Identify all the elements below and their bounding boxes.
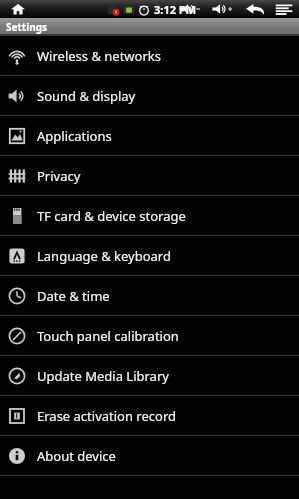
button[interactable]: Menu — [275, 1, 293, 17]
button[interactable]: Sound & display — [0, 76, 299, 115]
staticText: TF card & device storage — [37, 207, 186, 225]
staticText: Sound & display — [37, 87, 136, 105]
staticText: Date & time — [37, 287, 110, 305]
staticText: About device — [37, 447, 116, 465]
staticText: Language & keyboard — [37, 247, 171, 265]
staticText: Erase activation record — [37, 407, 177, 425]
button[interactable]: Volume down — [179, 1, 203, 17]
button[interactable]: About device — [0, 436, 299, 475]
staticText: Update Media Library — [37, 367, 169, 385]
staticText: Wireless & networks — [37, 47, 161, 65]
staticText: Applications — [37, 127, 112, 145]
button[interactable]: Back — [245, 1, 265, 17]
button[interactable]: Language & keyboard — [0, 236, 299, 275]
button[interactable]: TF card & device storage — [0, 196, 299, 235]
button[interactable]: Touch panel calibration — [0, 316, 299, 355]
button[interactable]: Applications — [0, 116, 299, 155]
staticText: Settings — [6, 20, 47, 34]
staticText: Privacy — [37, 167, 81, 185]
button[interactable]: Date & time — [0, 276, 299, 315]
button[interactable]: Wireless & networks — [0, 36, 299, 75]
staticText: 3:12 PM — [154, 2, 197, 17]
button[interactable]: Home — [10, 1, 26, 17]
button[interactable]: Privacy — [0, 156, 299, 195]
button[interactable]: Volume up — [211, 1, 235, 17]
button[interactable]: Erase activation record — [0, 396, 299, 435]
button[interactable]: Update Media Library — [0, 356, 299, 395]
staticText: Touch panel calibration — [37, 327, 179, 345]
